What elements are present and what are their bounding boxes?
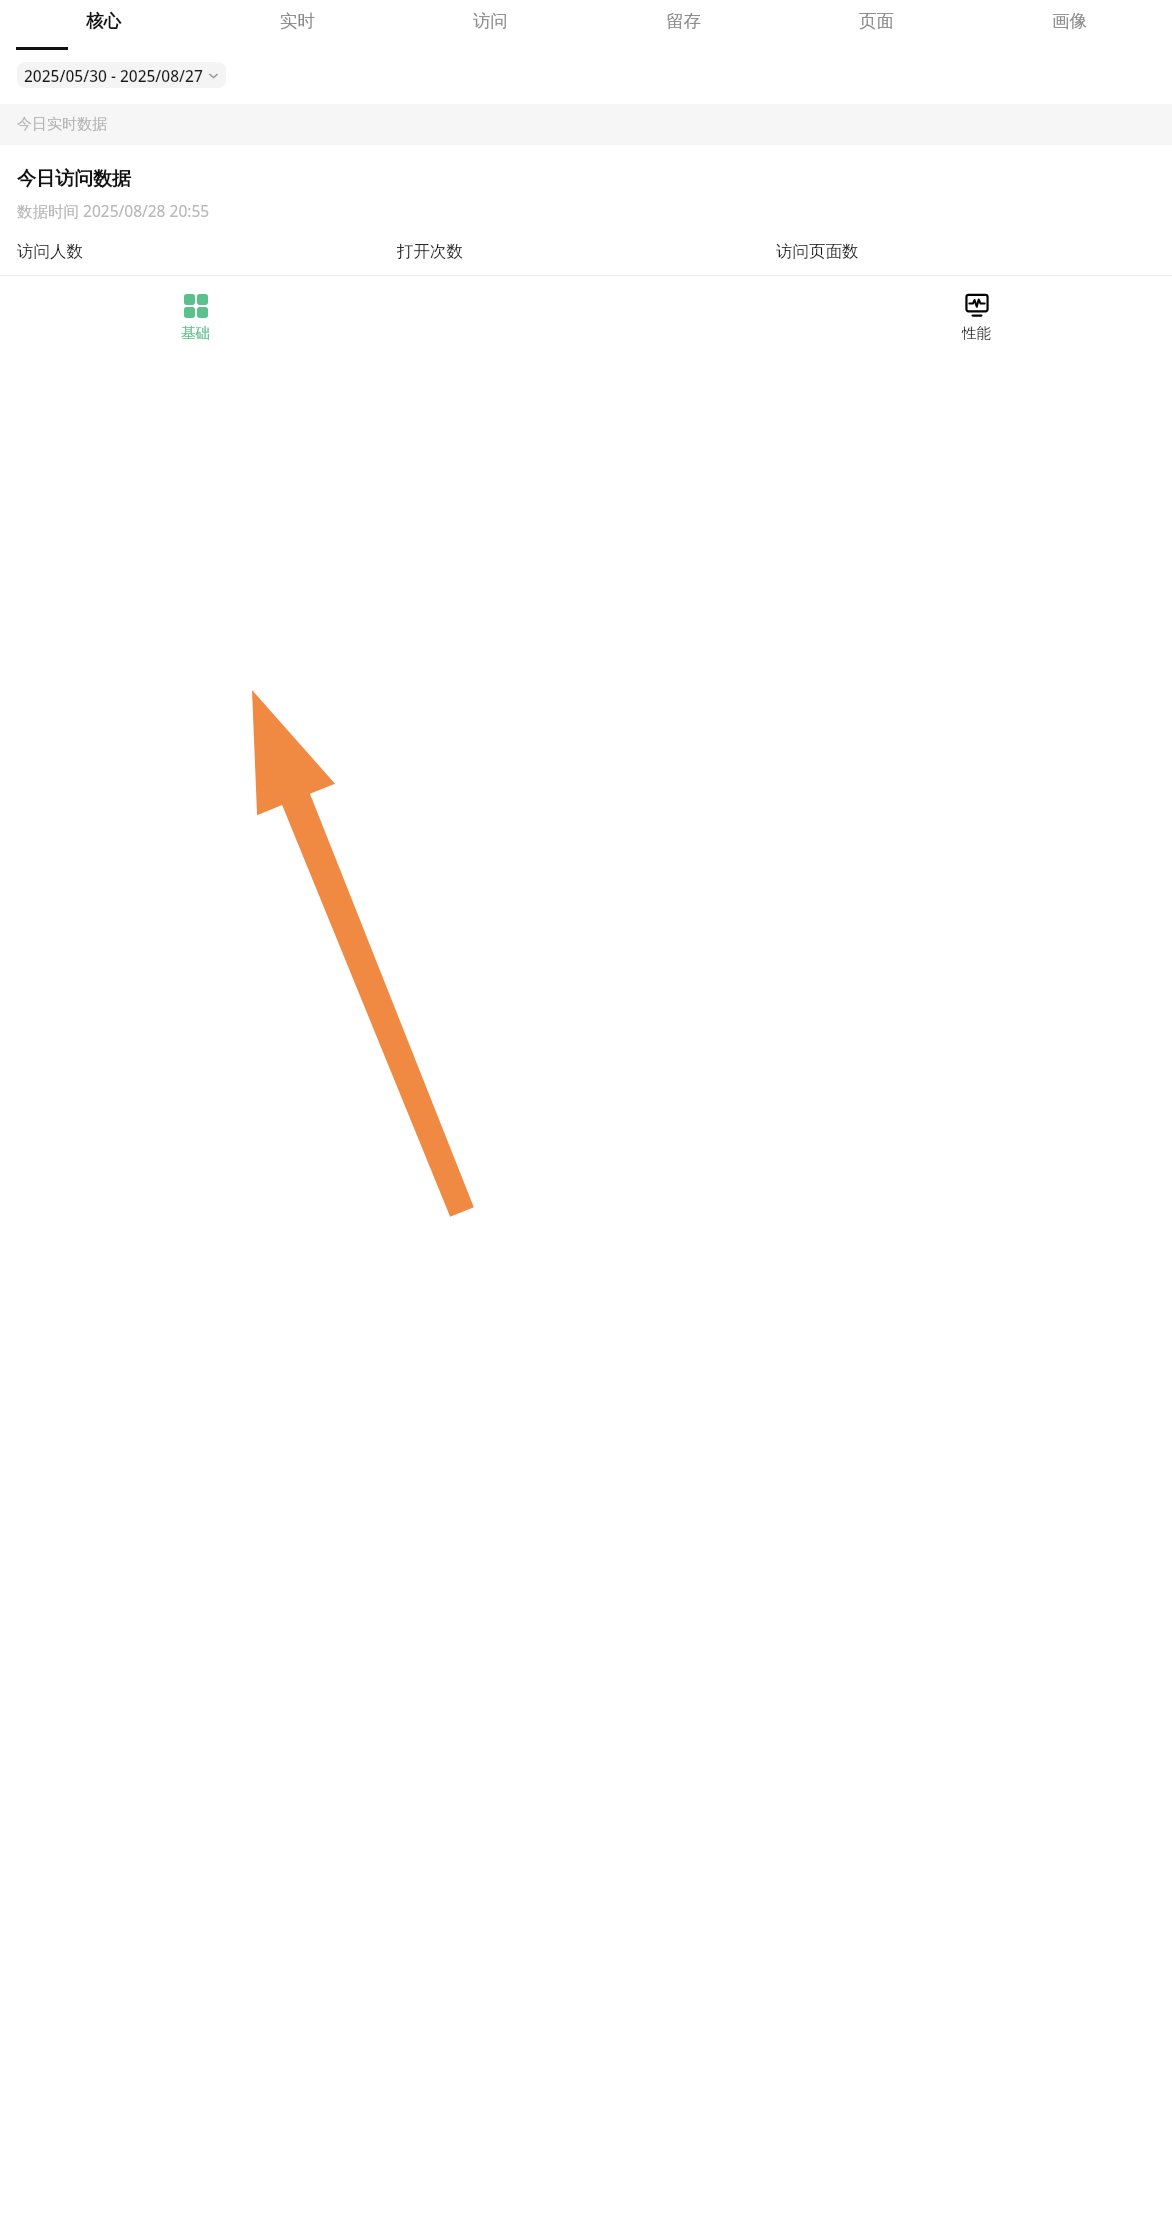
- staticText: 访问人数: [17, 241, 83, 262]
- button[interactable]: 访问: [394, 0, 587, 42]
- button[interactable]: 实时: [200, 0, 394, 42]
- staticText: 核心: [86, 10, 121, 32]
- button[interactable]: 性能: [948, 292, 1005, 344]
- button[interactable]: 打开次数: [397, 241, 776, 262]
- staticText: 今日访问数据: [17, 167, 131, 191]
- staticText: 访问: [473, 10, 508, 32]
- staticText: 2025/05/30 - 2025/08/27: [24, 65, 203, 86]
- button[interactable]: 留存: [587, 0, 780, 42]
- button[interactable]: 访问人数: [17, 241, 397, 262]
- staticText: 留存: [666, 10, 701, 32]
- staticText: 访问页面数: [776, 241, 859, 262]
- staticText: 基础: [181, 324, 210, 342]
- button[interactable]: 画像: [973, 0, 1166, 42]
- staticText: 页面: [859, 10, 894, 32]
- button[interactable]: 核心: [6, 0, 200, 42]
- staticText: 画像: [1052, 10, 1087, 32]
- staticText: 实时: [280, 10, 315, 32]
- button[interactable]: 访问页面数: [776, 241, 1155, 262]
- staticText: 数据时间 2025/08/28 20:55: [17, 200, 210, 221]
- button[interactable]: 今日实时数据: [0, 104, 1172, 145]
- staticText: 打开次数: [397, 241, 463, 262]
- staticText: 性能: [962, 324, 991, 342]
- staticText: 今日实时数据: [17, 115, 107, 134]
- button[interactable]: 基础: [167, 292, 224, 344]
- other: 性能: [965, 294, 989, 318]
- button[interactable]: 页面: [780, 0, 973, 42]
- button[interactable]: 2025/05/30 - 2025/08/27: [17, 62, 226, 88]
